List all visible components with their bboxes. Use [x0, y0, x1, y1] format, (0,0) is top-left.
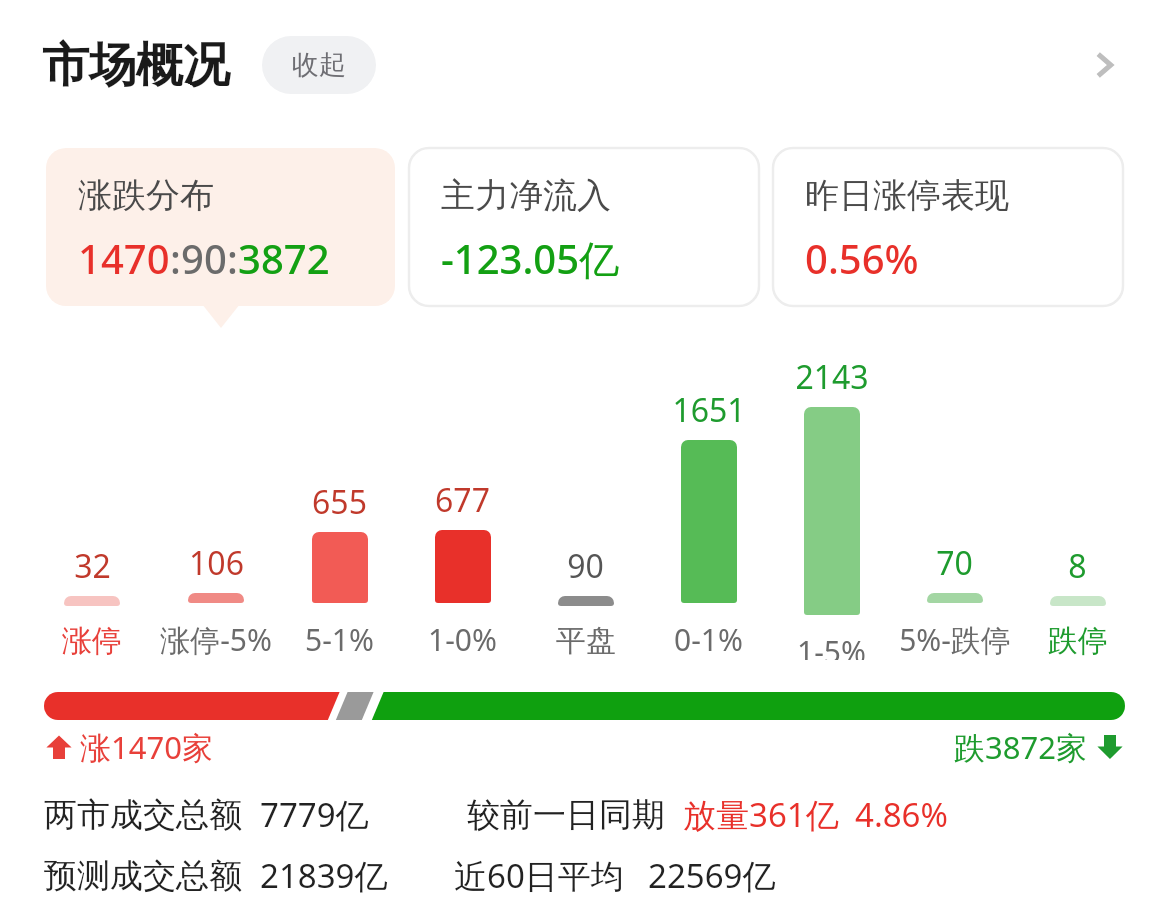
staticText: 两市成交总额	[44, 794, 242, 836]
staticText: 106	[189, 541, 244, 585]
staticText: 32	[74, 544, 111, 588]
staticText: 1470	[78, 231, 170, 285]
staticText: -123.05亿	[441, 231, 620, 286]
staticText: 70	[936, 541, 973, 585]
staticText: 近60日平均	[454, 853, 624, 898]
staticText: 7779亿	[260, 792, 369, 837]
staticText: 收起	[292, 48, 346, 82]
staticText: 5%-跌停	[899, 619, 1011, 660]
button[interactable]: 收起	[262, 36, 376, 94]
button[interactable]: 昨日涨停表现	[773, 148, 1123, 306]
staticText: 0-1%	[674, 619, 743, 660]
staticText: :	[227, 231, 238, 285]
staticText: 涨停	[62, 622, 122, 660]
staticText: 22569亿	[648, 853, 776, 898]
staticText: 涨1470家	[80, 726, 213, 768]
staticText: 放量361亿	[683, 792, 839, 837]
button[interactable]: More	[1069, 30, 1139, 100]
staticText: 1-5%	[797, 631, 866, 660]
staticText: 跌停	[1048, 622, 1108, 660]
staticText: 90	[567, 544, 604, 588]
staticText: 2143	[795, 355, 869, 399]
staticText: 90	[181, 231, 227, 285]
staticText: 跌3872家	[954, 726, 1087, 768]
staticText: 涨停-5%	[160, 619, 272, 660]
staticText: 预测成交总额	[44, 855, 242, 897]
staticText: 5-1%	[305, 619, 374, 660]
staticText: 8	[1068, 544, 1087, 588]
staticText: 平盘	[556, 622, 616, 660]
staticText: 主力净流入	[441, 174, 611, 217]
staticText: 21839亿	[260, 853, 388, 898]
staticText: :	[170, 231, 181, 285]
staticText: 655	[312, 480, 367, 524]
staticText: 较前一日同期	[467, 794, 665, 836]
staticText: 涨跌分布	[78, 174, 214, 217]
button[interactable]: 涨跌分布	[46, 148, 395, 306]
staticText: 4.86%	[855, 792, 948, 837]
staticText: 1651	[672, 388, 746, 432]
staticText: 1-0%	[428, 619, 497, 660]
staticText: 市场概况	[42, 36, 230, 95]
staticText: 677	[435, 478, 490, 522]
staticText: 3872	[238, 231, 330, 285]
staticText: 昨日涨停表现	[805, 174, 1009, 217]
button[interactable]: 主力净流入	[409, 148, 759, 306]
staticText: 0.56%	[805, 231, 919, 285]
